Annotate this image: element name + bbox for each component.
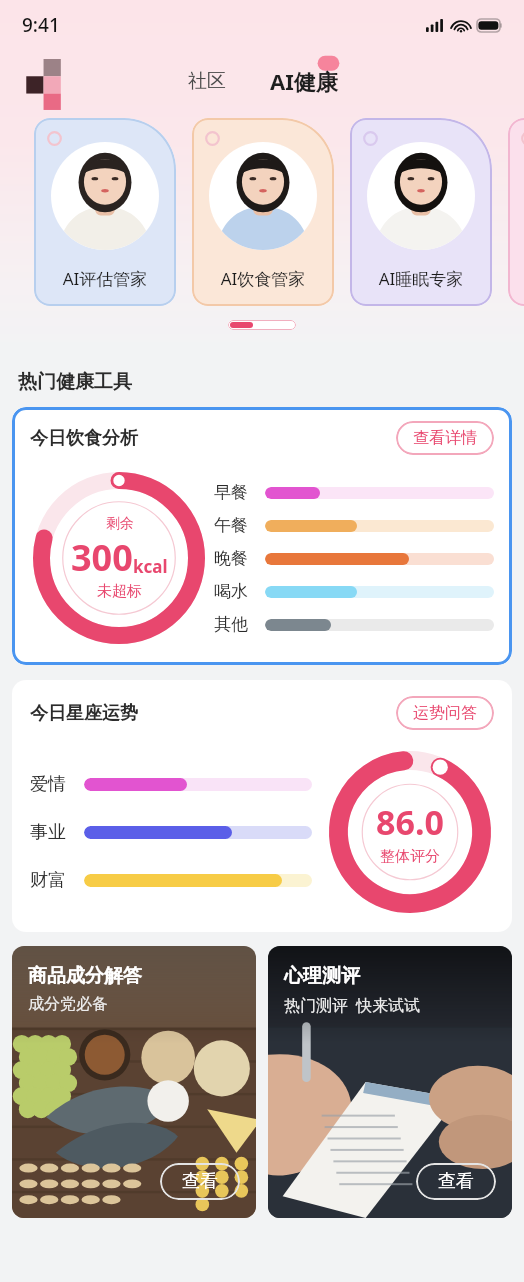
other: Logo — [24, 59, 62, 103]
staticText: 9:41 — [22, 12, 60, 38]
staticText: 查看 — [182, 1170, 218, 1193]
staticText: 爱情 — [30, 773, 78, 796]
staticText: 未超标 — [97, 582, 142, 601]
staticText: 早餐 — [214, 482, 258, 503]
staticText: 今日饮食分析 — [30, 427, 138, 450]
other: Wi-Fi — [452, 19, 470, 32]
staticText: 午餐 — [214, 515, 258, 536]
staticText: AI睡眠专家 — [350, 267, 492, 290]
staticText: 事业 — [30, 821, 78, 844]
staticText: 心理测评 — [284, 964, 360, 988]
staticText: 商品成分解答 — [28, 964, 142, 988]
staticText: 今日星座运势 — [30, 702, 138, 725]
button[interactable]: AI评估管家 — [34, 118, 176, 306]
staticText: 查看详情 — [413, 428, 477, 448]
button[interactable]: AI睡眠专家 — [350, 118, 492, 306]
staticText: 86.0 — [376, 799, 444, 845]
staticText: AI健康 — [270, 66, 338, 96]
staticText: 热门测评 快来试试 — [284, 994, 421, 1016]
staticText: 整体评分 — [380, 847, 440, 866]
staticText: 热门健康工具 — [18, 370, 132, 394]
button[interactable]: 今日饮食分析 — [12, 407, 512, 665]
staticText: 社区 — [188, 69, 226, 93]
staticText: 成分党必备 — [28, 994, 108, 1014]
other: Battery — [477, 19, 502, 32]
staticText: 运势问答 — [413, 703, 477, 723]
staticText: 300 — [71, 533, 133, 582]
staticText: 其他 — [214, 614, 258, 635]
staticText: 剩余 — [106, 515, 134, 533]
button[interactable]: 心理测评 — [268, 946, 512, 1218]
button[interactable]: 社区 — [178, 63, 236, 99]
button[interactable]: AI心理专家 — [508, 118, 524, 306]
button[interactable]: 今日星座运势 — [12, 680, 512, 932]
button[interactable]: 查看 — [160, 1163, 240, 1200]
button[interactable]: 查看详情 — [396, 421, 494, 455]
button[interactable]: AI健康 — [262, 64, 346, 98]
staticText: AI心理专家 — [508, 267, 524, 290]
button[interactable]: 运势问答 — [396, 696, 494, 730]
other: Signal — [426, 19, 445, 32]
staticText: 财富 — [30, 869, 78, 892]
staticText: 喝水 — [214, 581, 258, 602]
staticText: kcal — [133, 555, 168, 578]
button[interactable]: AI饮食管家 — [192, 118, 334, 306]
staticText: AI饮食管家 — [192, 267, 334, 290]
button[interactable]: 商品成分解答 — [12, 946, 256, 1218]
staticText: 晚餐 — [214, 548, 258, 569]
staticText: 查看 — [438, 1170, 474, 1193]
staticText: AI评估管家 — [34, 267, 176, 290]
button[interactable]: 查看 — [416, 1163, 496, 1200]
